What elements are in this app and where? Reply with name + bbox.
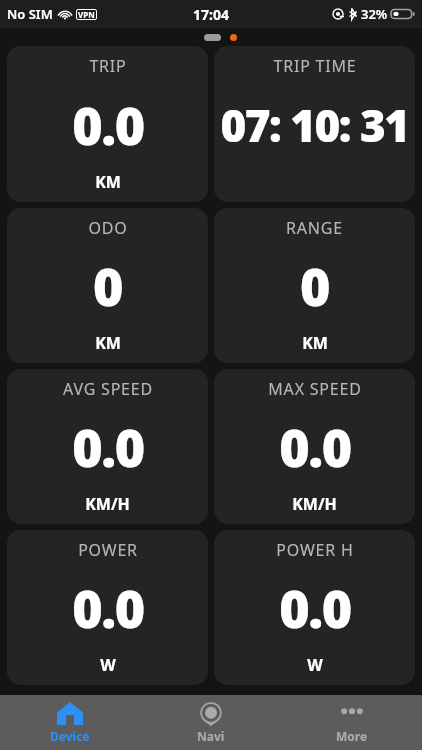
staticText: More	[336, 728, 368, 744]
staticText: KM/H	[292, 493, 337, 515]
button[interactable]: More	[281, 695, 422, 750]
staticText: Device	[50, 728, 90, 744]
button[interactable]: TRIP TIME	[214, 46, 415, 202]
button[interactable]: AVG SPEED	[7, 369, 208, 524]
button[interactable]: ODO	[7, 208, 208, 363]
staticText: 0	[93, 250, 122, 321]
staticText: 32%	[361, 5, 388, 23]
staticText: 0	[300, 250, 329, 321]
staticText: 0.0	[279, 411, 351, 482]
staticText: 17:04	[193, 5, 229, 24]
staticText: AVG SPEED	[63, 378, 153, 400]
staticText: Navi	[197, 728, 225, 744]
staticText: RANGE	[286, 217, 343, 239]
staticText: 0.0	[72, 572, 144, 643]
button[interactable]: Device	[0, 695, 140, 750]
staticText: 0.0	[279, 572, 351, 643]
button[interactable]: TRIP	[7, 46, 208, 202]
staticText: TRIP	[89, 55, 127, 77]
staticText: KM/H	[85, 493, 130, 515]
button[interactable]: POWER H	[214, 530, 415, 685]
staticText: MAX SPEED	[268, 378, 362, 400]
staticText: POWER H	[276, 539, 354, 561]
staticText: KM	[95, 171, 121, 193]
staticText: 0.0	[72, 89, 144, 160]
button[interactable]: RANGE	[214, 208, 415, 363]
staticText: VPN	[78, 9, 95, 20]
staticText: ODO	[88, 217, 128, 239]
staticText: 0.0	[72, 411, 144, 482]
staticText: 07: 10: 31	[220, 95, 409, 155]
staticText: POWER	[78, 539, 138, 561]
other: Navi	[198, 702, 224, 725]
button[interactable]: Navi	[140, 695, 281, 750]
staticText: TRIP TIME	[273, 55, 357, 77]
button[interactable]: POWER	[7, 530, 208, 685]
staticText: KM	[302, 332, 328, 354]
staticText: No SIM	[7, 5, 53, 23]
staticText: KM	[95, 332, 121, 354]
button[interactable]: MAX SPEED	[214, 369, 415, 524]
staticText: W	[307, 654, 323, 676]
staticText: W	[100, 654, 116, 676]
other: More	[339, 702, 365, 725]
